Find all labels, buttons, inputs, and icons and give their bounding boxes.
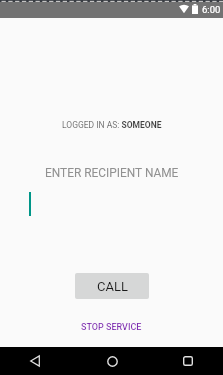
staticText: LOGGED IN AS: SOMEONE [62, 120, 162, 130]
button[interactable]: STOP SERVICE [75, 319, 148, 336]
button[interactable]: CALL [75, 273, 149, 299]
button[interactable]: Home [92, 347, 132, 375]
button[interactable]: Recents [168, 347, 208, 375]
staticText: 6:00 [202, 4, 221, 15]
staticText: CALL [97, 279, 128, 294]
button[interactable]: Back [15, 347, 55, 375]
staticText: ENTER RECIPIENT NAME [45, 166, 179, 180]
staticText: STOP SERVICE [81, 322, 142, 333]
